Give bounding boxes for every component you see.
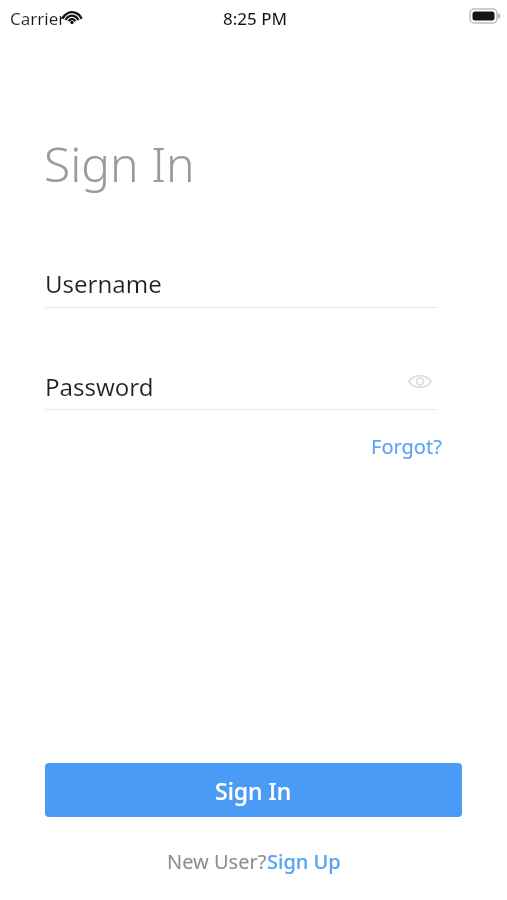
staticText: 8:25 PM bbox=[223, 7, 288, 30]
staticText: New User? bbox=[167, 848, 267, 875]
staticText: Sign Up bbox=[267, 848, 341, 875]
staticText: Sign In bbox=[44, 131, 195, 196]
button[interactable]: Sign In bbox=[45, 763, 462, 817]
staticText: Forgot? bbox=[371, 433, 442, 460]
button[interactable]: New User? bbox=[167, 848, 341, 875]
button[interactable]: Show password bbox=[404, 366, 435, 397]
button[interactable]: Forgot? bbox=[361, 428, 452, 465]
staticText: Password bbox=[45, 370, 154, 403]
staticText: Carrier bbox=[10, 7, 66, 30]
staticText: Username bbox=[45, 267, 162, 300]
staticText: Sign In bbox=[215, 775, 292, 806]
